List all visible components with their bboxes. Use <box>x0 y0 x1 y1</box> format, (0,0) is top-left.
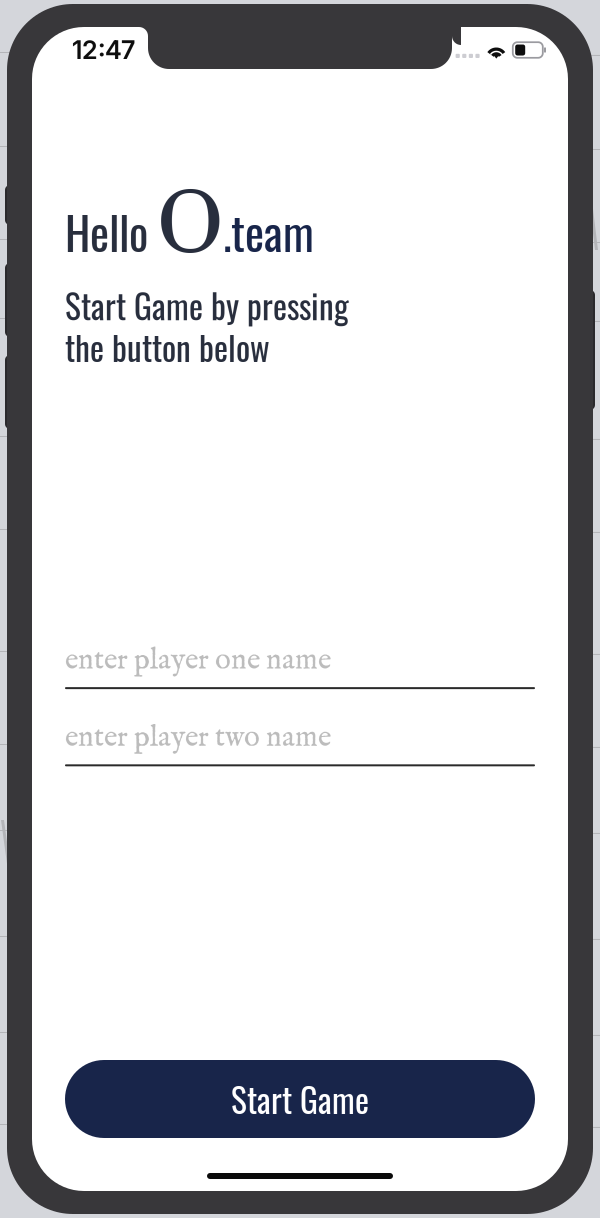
staticText: enter player one name <box>65 642 331 679</box>
staticText: 12:47 <box>72 35 135 65</box>
button[interactable]: enter player two name <box>65 719 535 766</box>
staticText: Start Game <box>231 1074 369 1124</box>
staticText: O <box>157 169 223 282</box>
button[interactable]: Start Game <box>65 1060 535 1138</box>
staticText: Start Game by pressing the button below <box>65 284 349 368</box>
staticText: .team <box>223 198 314 265</box>
button[interactable]: enter player one name <box>65 642 535 689</box>
staticText: Hello <box>65 198 148 265</box>
staticText: enter player two name <box>65 719 331 756</box>
